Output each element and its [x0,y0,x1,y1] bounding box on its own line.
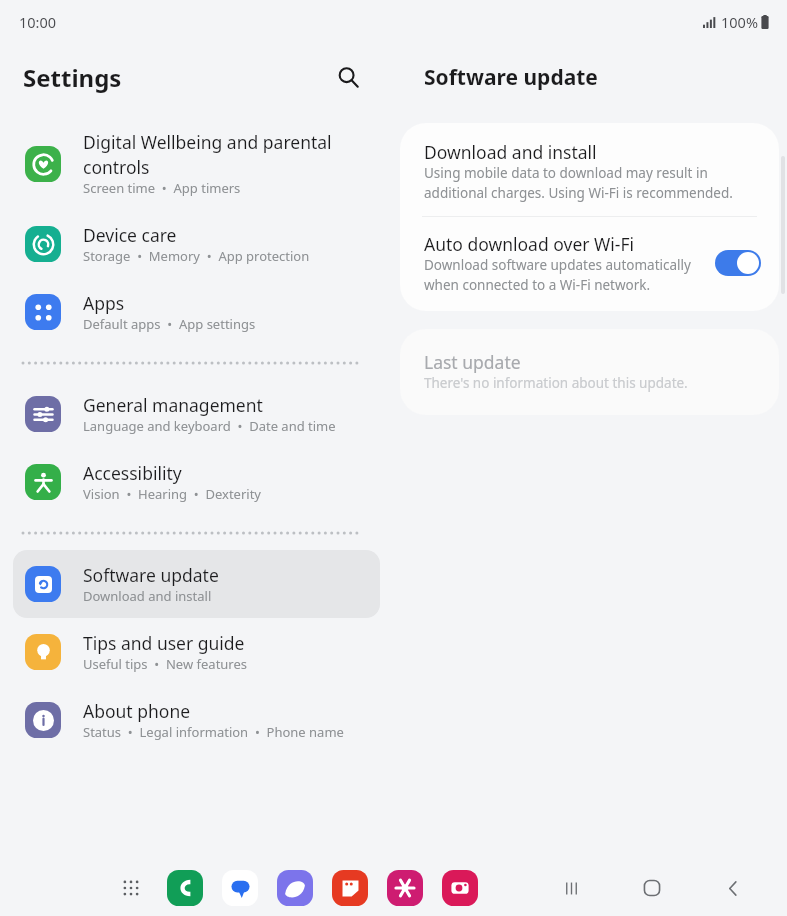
button[interactable]: Software update [13,550,380,618]
staticText: Download and install [424,140,597,164]
button[interactable]: Auto download over Wi-Fi [400,217,779,311]
staticText: There's no information about this update… [424,374,688,392]
button[interactable]: About phone [13,686,380,754]
staticText: 10:00 [19,12,57,32]
button[interactable]: App [167,870,203,906]
button[interactable]: Recents [545,862,597,914]
staticText: Default apps • App settings [83,315,256,333]
staticText: Tips and user guide [83,631,245,655]
button[interactable]: Apps [114,871,148,905]
staticText: About phone [83,699,191,723]
staticText: Using mobile data to download may result… [424,164,733,202]
staticText: Digital Wellbeing and parental controls [83,130,332,179]
button[interactable]: Search [327,56,369,98]
button[interactable]: Accessibility [13,448,380,516]
staticText: General management [83,393,263,417]
button[interactable]: Device care [13,210,380,278]
button[interactable]: General management [13,380,380,448]
staticText: Auto download over Wi-Fi [424,232,635,256]
staticText: Vision • Hearing • Dexterity [83,485,261,503]
button[interactable]: Home [626,862,678,914]
button[interactable]: App [387,870,423,906]
button[interactable]: App [332,870,368,906]
staticText: Storage • Memory • App protection [83,247,310,265]
staticText: 100% [721,12,758,32]
button[interactable]: Apps [13,278,380,346]
staticText: Software update [424,63,598,92]
button[interactable]: App [222,870,258,906]
button[interactable]: App [442,870,478,906]
button[interactable]: App [277,870,313,906]
button[interactable]: Back [707,862,759,914]
staticText: Language and keyboard • Date and time [83,417,336,435]
button[interactable]: Tips and user guide [13,618,380,686]
button[interactable]: Download and install [400,123,779,216]
staticText: Last update [424,350,521,374]
staticText: Apps [83,291,125,315]
staticText: Accessibility [83,461,182,485]
staticText: Device care [83,223,177,247]
button[interactable]: Digital Wellbeing and parental controls [13,117,380,210]
staticText: Software update [83,563,219,587]
staticText: Settings [23,61,122,94]
button[interactable]: Auto download over Wi-Fi [715,250,761,276]
staticText: Screen time • App timers [83,179,241,197]
button[interactable]: Last update [400,329,779,415]
staticText: Download software updates automatically … [424,256,691,294]
staticText: Download and install [83,587,212,605]
staticText: Useful tips • New features [83,655,248,673]
staticText: Status • Legal information • Phone name [83,723,344,741]
